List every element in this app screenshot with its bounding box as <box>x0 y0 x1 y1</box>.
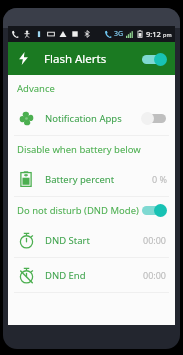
staticText: Disable when battery below <box>17 143 141 156</box>
staticText: pm <box>163 31 172 38</box>
staticText: DND Start <box>45 234 90 247</box>
staticText: 3G <box>114 29 124 39</box>
button[interactable]: Battery percent <box>8 162 175 196</box>
button[interactable]: DND Mode toggle <box>141 202 167 218</box>
staticText: Notification Apps <box>45 112 122 125</box>
staticText: 00:00 <box>143 234 167 246</box>
staticText: 0 % <box>152 173 167 185</box>
button[interactable]: Notification Apps toggle <box>141 110 167 126</box>
button[interactable]: DND End <box>8 258 175 292</box>
button[interactable]: Do not disturb (DND Mode) <box>8 197 175 223</box>
button[interactable]: DND Start <box>8 223 175 257</box>
staticText: Battery percent <box>45 173 115 186</box>
other: Flash <box>17 52 30 65</box>
staticText: Advance <box>17 82 55 95</box>
staticText: Do not disturb (DND Mode) <box>17 204 139 217</box>
staticText: 00:00 <box>143 269 167 281</box>
button[interactable]: Notification Apps <box>8 101 175 135</box>
button[interactable]: Enable Flash Alerts <box>141 51 167 67</box>
staticText: 9:12 <box>146 29 161 39</box>
staticText: Flash Alerts <box>44 51 107 67</box>
staticText: DND End <box>45 269 86 282</box>
